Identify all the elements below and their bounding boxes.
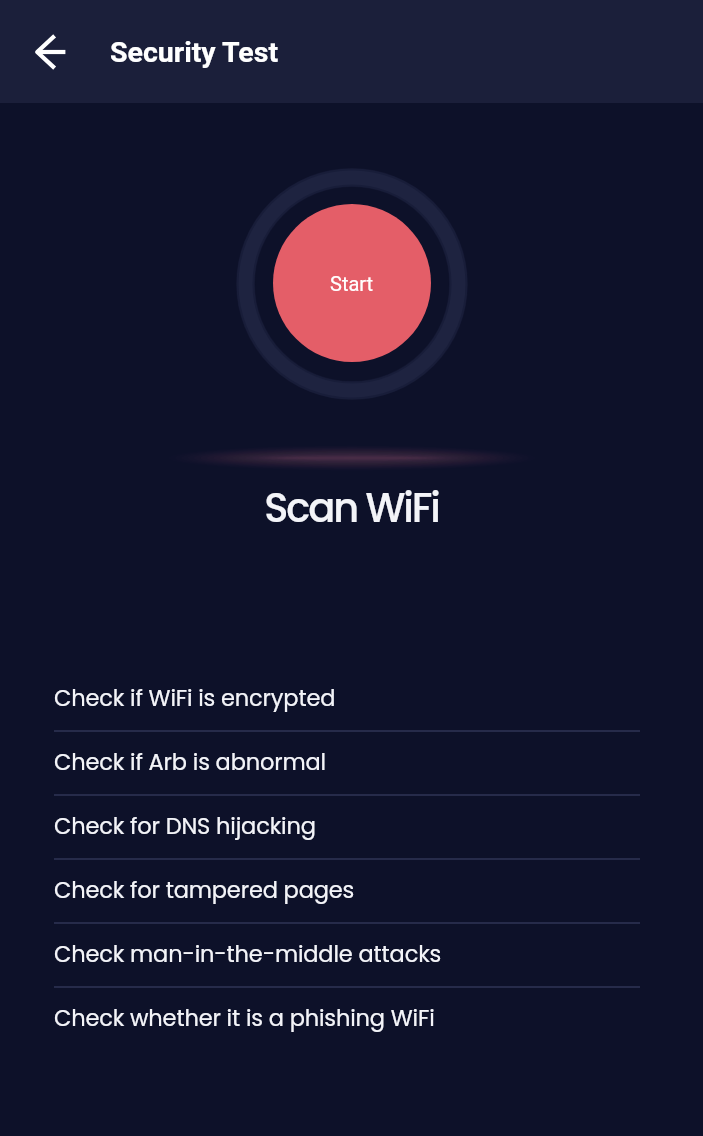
button[interactable]: Check if WiFi is encrypted (0, 666, 703, 730)
staticText: Check if Arb is abnormal (54, 746, 326, 777)
button[interactable]: Check man-in-the-middle attacks (0, 922, 703, 986)
button[interactable]: Back (15, 16, 87, 88)
button[interactable]: Check for tampered pages (0, 858, 703, 922)
staticText: Check whether it is a phishing WiFi (54, 1002, 435, 1033)
staticText: Scan WiFi (0, 480, 703, 536)
button[interactable]: Start (273, 204, 431, 362)
button[interactable]: Check if Arb is abnormal (0, 730, 703, 794)
staticText: Check if WiFi is encrypted (54, 682, 336, 713)
staticText: Check for tampered pages (54, 874, 355, 905)
button[interactable]: Check for DNS hijacking (0, 794, 703, 858)
staticText: Check for DNS hijacking (54, 810, 316, 841)
staticText: Start (330, 272, 374, 295)
button[interactable]: Check whether it is a phishing WiFi (0, 986, 703, 1050)
staticText: Check man-in-the-middle attacks (54, 938, 442, 969)
staticText: Security Test (110, 36, 279, 69)
